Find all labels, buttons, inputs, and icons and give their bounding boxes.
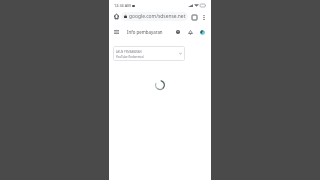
button[interactable]: AKUN PEMBAYARAN xyxy=(113,46,185,61)
button[interactable]: Tabs xyxy=(190,13,198,21)
staticText: AKUN PEMBAYARAN xyxy=(116,50,142,54)
button[interactable]: Help xyxy=(172,26,184,38)
button[interactable]: google.com/sdsense.net xyxy=(121,12,188,21)
button[interactable]: Account xyxy=(196,26,208,38)
button[interactable]: Home xyxy=(112,12,121,21)
staticText: google.com/sdsense.net xyxy=(129,13,186,20)
staticText: Info pembayaran xyxy=(127,29,163,35)
button[interactable]: Menu xyxy=(111,27,121,37)
button[interactable]: More options xyxy=(200,13,208,21)
button[interactable]: Notifications xyxy=(184,26,196,38)
staticText: YouTube (Indonesia) xyxy=(116,55,144,59)
staticText: 12:34 AM xyxy=(114,3,131,8)
